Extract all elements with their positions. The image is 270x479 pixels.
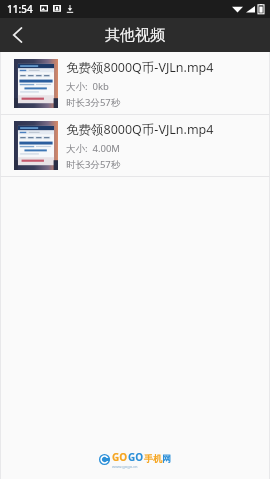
staticText: 大小: 0kb xyxy=(66,80,109,93)
staticText: 大小: 4.00M xyxy=(66,142,120,155)
button[interactable]: Back xyxy=(0,18,34,52)
staticText: 11:54 xyxy=(7,2,33,16)
staticText: 时长3分57秒 xyxy=(66,96,121,109)
staticText: 网 xyxy=(162,453,171,464)
button[interactable]: 免费领8000Q币-VJLn.mp4 xyxy=(0,53,270,114)
staticText: GO xyxy=(112,450,128,464)
staticText: 免费领8000Q币-VJLn.mp4 xyxy=(66,121,214,138)
button[interactable]: 免费领8000Q币-VJLn.mp4 xyxy=(0,115,270,176)
staticText: 手机 xyxy=(144,453,162,464)
staticText: GO xyxy=(128,450,144,464)
staticText: 其他视频 xyxy=(105,26,165,45)
staticText: 时长3分57秒 xyxy=(66,158,121,171)
staticText: www.gogo.cn xyxy=(112,464,138,469)
staticText: 免费领8000Q币-VJLn.mp4 xyxy=(66,59,214,76)
